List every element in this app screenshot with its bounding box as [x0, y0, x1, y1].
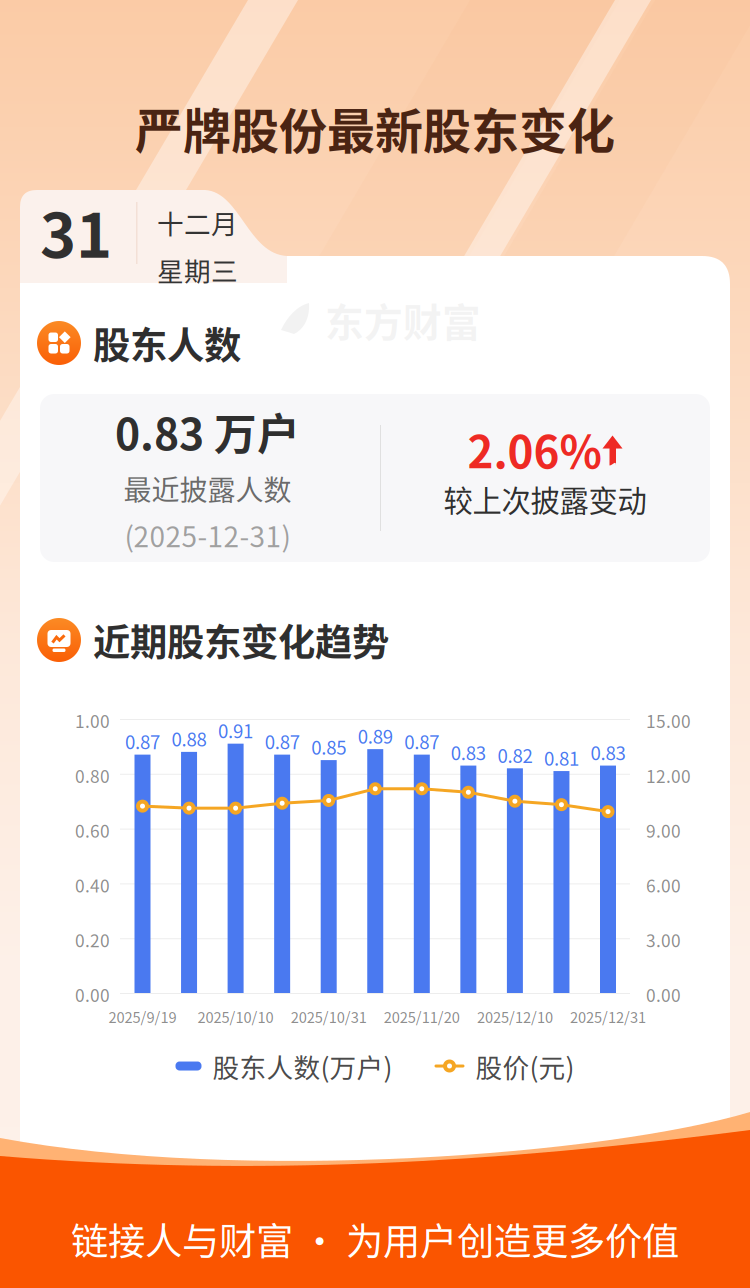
staticText: 链接人与财富 · 为用户创造更多价值	[71, 1212, 679, 1266]
staticText: 9.00	[646, 818, 681, 843]
staticText: 2025/11/20	[384, 1006, 460, 1027]
staticText: 2025/9/19	[108, 1006, 176, 1027]
staticText: 0.87	[265, 728, 300, 755]
staticText: 股东人数(万户)	[212, 1047, 392, 1085]
staticText: 2025/12/31	[570, 1006, 646, 1027]
staticText: 0.83 万户	[115, 401, 300, 462]
staticText: 十二月	[157, 203, 238, 242]
staticText: 0.00	[75, 982, 110, 1007]
staticText: 15.00	[646, 708, 691, 733]
staticText: 0.87	[125, 728, 160, 755]
staticText: 0.83	[590, 739, 625, 766]
staticText: 6.00	[646, 872, 681, 897]
staticText: 最近披露人数	[123, 468, 291, 509]
staticText: 0.00	[646, 982, 681, 1007]
staticText: 近期股东变化趋势	[93, 613, 389, 667]
staticText: 0.87	[404, 728, 439, 755]
staticText: 0.82	[497, 741, 532, 768]
staticText: 2025/12/10	[477, 1006, 553, 1027]
staticText: 东方财富	[325, 292, 481, 348]
staticText: 2.06%	[467, 417, 601, 481]
staticText: 31	[40, 187, 112, 275]
staticText: 2025/10/31	[291, 1006, 367, 1027]
staticText: 0.20	[75, 927, 110, 952]
staticText: 0.91	[218, 717, 253, 744]
staticText: 0.85	[311, 733, 346, 760]
staticText: 严牌股份最新股东变化	[135, 93, 615, 162]
staticText: 0.60	[75, 818, 110, 843]
staticText: 1.00	[75, 708, 110, 733]
staticText: 0.88	[172, 725, 207, 752]
staticText: 3.00	[646, 927, 681, 952]
staticText: 0.40	[75, 872, 110, 897]
staticText: 较上次披露变动	[443, 478, 646, 520]
staticText: 股价(元)	[475, 1047, 574, 1085]
staticText: (2025-12-31)	[124, 515, 290, 555]
staticText: 星期三	[157, 251, 238, 289]
staticText: 0.89	[358, 722, 393, 749]
staticText: 0.81	[544, 744, 579, 771]
staticText: 12.00	[646, 763, 691, 788]
staticText: 0.83	[451, 739, 486, 766]
staticText: 股东人数	[93, 316, 241, 370]
staticText: 0.80	[75, 763, 110, 788]
staticText: 2025/10/10	[198, 1006, 274, 1027]
